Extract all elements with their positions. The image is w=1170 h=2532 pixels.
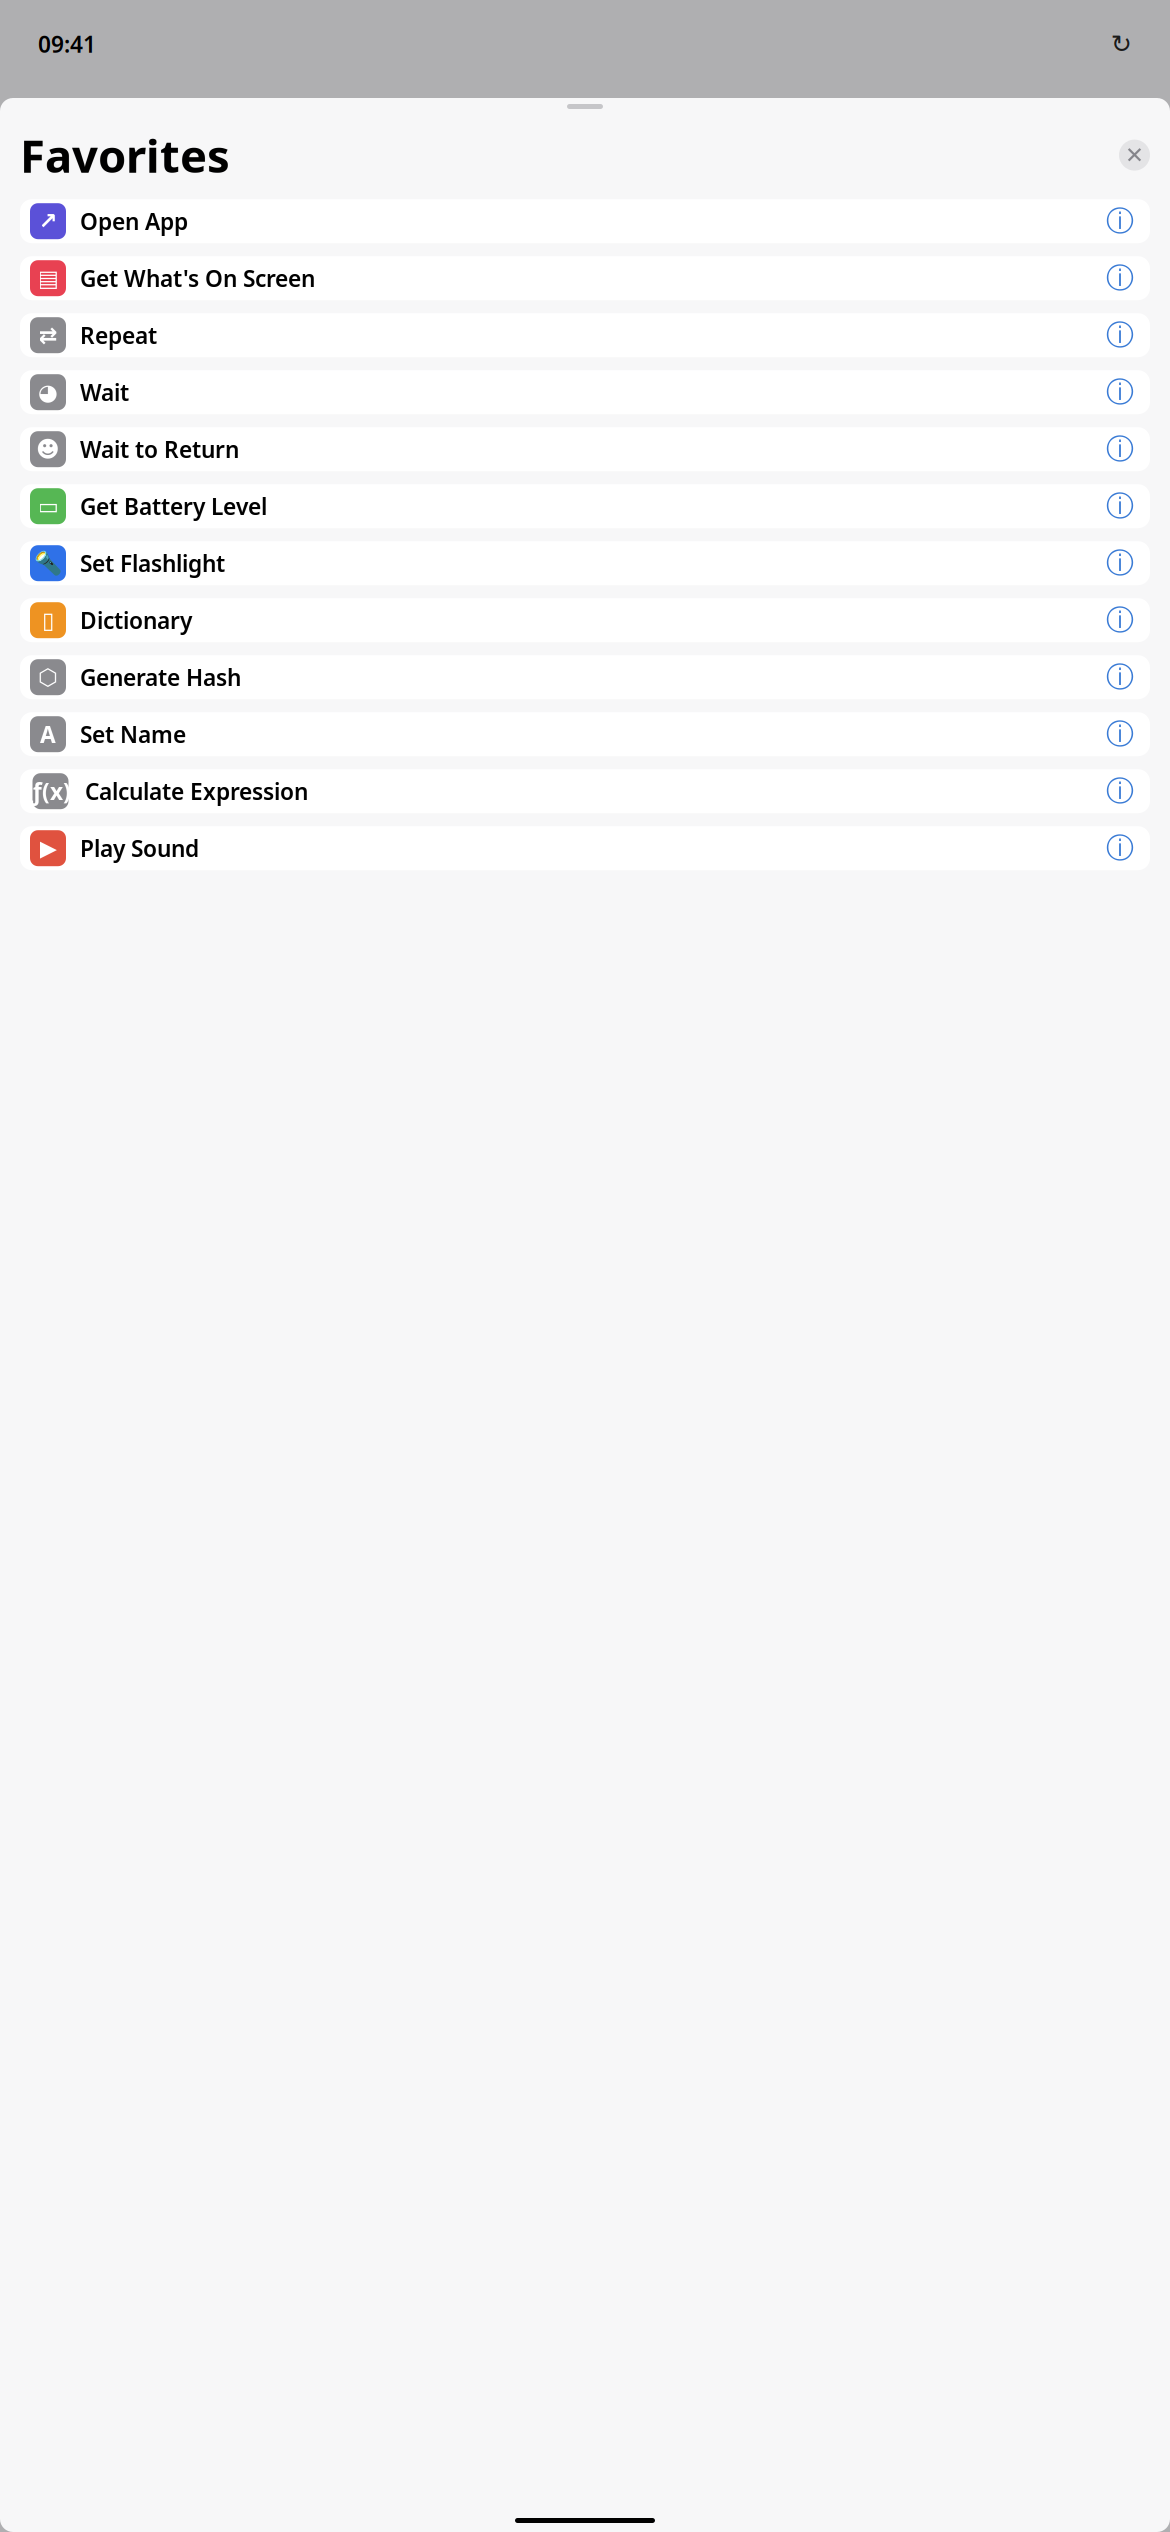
- staticText: Get What's On Screen: [80, 263, 315, 293]
- staticText: ⓘ: [1106, 375, 1134, 409]
- staticText: Wait to Return: [80, 434, 239, 464]
- staticText: ⓘ: [1106, 660, 1134, 694]
- button[interactable]: ▭: [20, 484, 1150, 528]
- staticText: Repeat: [80, 320, 157, 350]
- button[interactable]: ▶: [20, 826, 1150, 870]
- button[interactable]: ▤: [20, 256, 1150, 300]
- staticText: Play Sound: [80, 833, 199, 863]
- staticText: ⓘ: [1106, 261, 1134, 295]
- staticText: ⓘ: [1106, 831, 1134, 865]
- button[interactable]: Close: [1119, 140, 1150, 171]
- staticText: ⓘ: [1106, 717, 1134, 751]
- staticText: ⓘ: [1106, 204, 1134, 238]
- button[interactable]: ⬡: [20, 655, 1150, 699]
- staticText: Get Battery Level: [80, 491, 267, 521]
- staticText: ☻: [36, 436, 60, 462]
- staticText: Favorites: [20, 125, 230, 185]
- button[interactable]: Rotation Lock: [1111, 30, 1132, 58]
- button[interactable]: 🔦: [20, 541, 1150, 585]
- staticText: ⓘ: [1106, 603, 1134, 637]
- staticText: ⓘ: [1106, 546, 1134, 580]
- staticText: ▶: [39, 835, 56, 861]
- staticText: ƒ(x): [30, 776, 71, 806]
- staticText: Set Name: [80, 719, 186, 749]
- staticText: ▤: [37, 265, 58, 291]
- staticText: 🔦: [34, 550, 62, 576]
- staticText: ⬡: [38, 664, 58, 690]
- staticText: A: [40, 719, 56, 749]
- staticText: ✕: [1125, 142, 1144, 168]
- staticText: Wait: [80, 377, 129, 407]
- staticText: ⓘ: [1106, 432, 1134, 466]
- staticText: ↗: [38, 208, 57, 234]
- staticText: Dictionary: [80, 605, 192, 635]
- button[interactable]: ↗: [20, 199, 1150, 243]
- staticText: 09:41: [38, 29, 96, 59]
- staticText: Open App: [80, 206, 188, 236]
- button[interactable]: A: [20, 712, 1150, 756]
- button[interactable]: ◕: [20, 370, 1150, 414]
- staticText: ▯: [42, 607, 54, 633]
- staticText: ⓘ: [1106, 318, 1134, 352]
- staticText: ↻: [1111, 30, 1132, 58]
- staticText: Set Flashlight: [80, 548, 225, 578]
- staticText: ⓘ: [1106, 774, 1134, 808]
- button[interactable]: ƒ(x): [20, 769, 1150, 813]
- button[interactable]: ☻: [20, 427, 1150, 471]
- button[interactable]: ▯: [20, 598, 1150, 642]
- button[interactable]: ⇄: [20, 313, 1150, 357]
- staticText: ◕: [38, 379, 58, 405]
- staticText: Calculate Expression: [85, 776, 308, 806]
- staticText: ⓘ: [1106, 489, 1134, 523]
- staticText: ⇄: [38, 322, 57, 348]
- staticText: ▭: [37, 493, 58, 519]
- staticText: Generate Hash: [80, 662, 241, 692]
